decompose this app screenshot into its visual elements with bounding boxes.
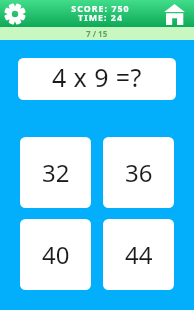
staticText: 44 [125, 238, 153, 271]
staticText: 40 [42, 238, 70, 271]
staticText: 4 x 9 =? [52, 60, 142, 94]
button[interactable]: 44 [103, 219, 174, 290]
button[interactable]: Home [164, 4, 185, 25]
button[interactable]: Settings [4, 3, 26, 25]
button[interactable]: 36 [103, 137, 174, 208]
staticText: 36 [125, 156, 153, 189]
staticText: 7 / 15 [86, 28, 108, 39]
button[interactable]: 40 [20, 219, 91, 290]
staticText: 32 [42, 156, 70, 189]
staticText: SCORE: 750 TIME: 24 [71, 3, 130, 23]
button[interactable]: 32 [20, 137, 91, 208]
